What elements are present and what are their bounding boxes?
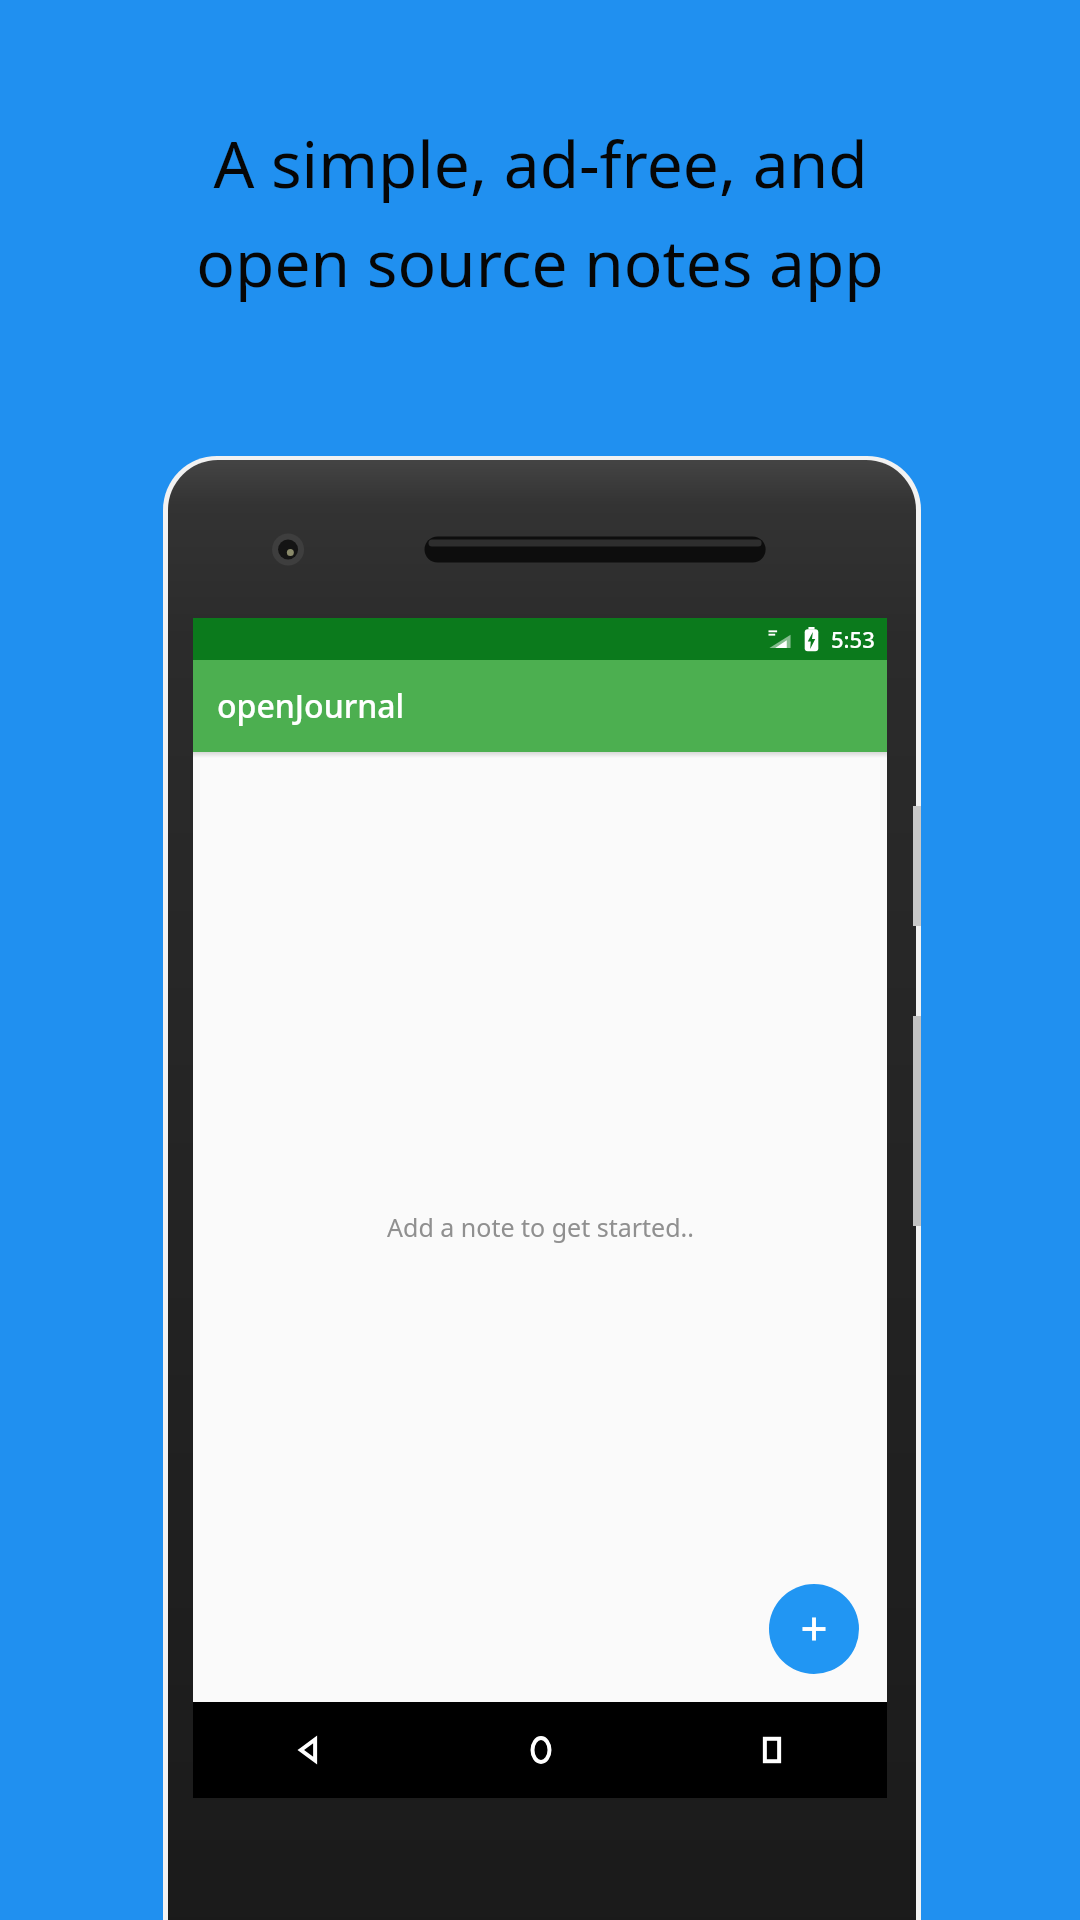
staticText: A simple, ad-free, and	[213, 120, 868, 207]
button[interactable]: openJournal	[193, 660, 887, 752]
staticText: Add a note to get started..	[387, 1210, 694, 1244]
staticText: openJournal	[217, 684, 405, 728]
button[interactable]: Add note	[769, 1584, 859, 1674]
staticText: open source notes app	[196, 219, 884, 306]
button[interactable]: Recents	[656, 1702, 887, 1798]
staticText: 5:53	[831, 624, 875, 654]
button[interactable]: Home	[425, 1702, 656, 1798]
button[interactable]: Back	[193, 1702, 425, 1798]
